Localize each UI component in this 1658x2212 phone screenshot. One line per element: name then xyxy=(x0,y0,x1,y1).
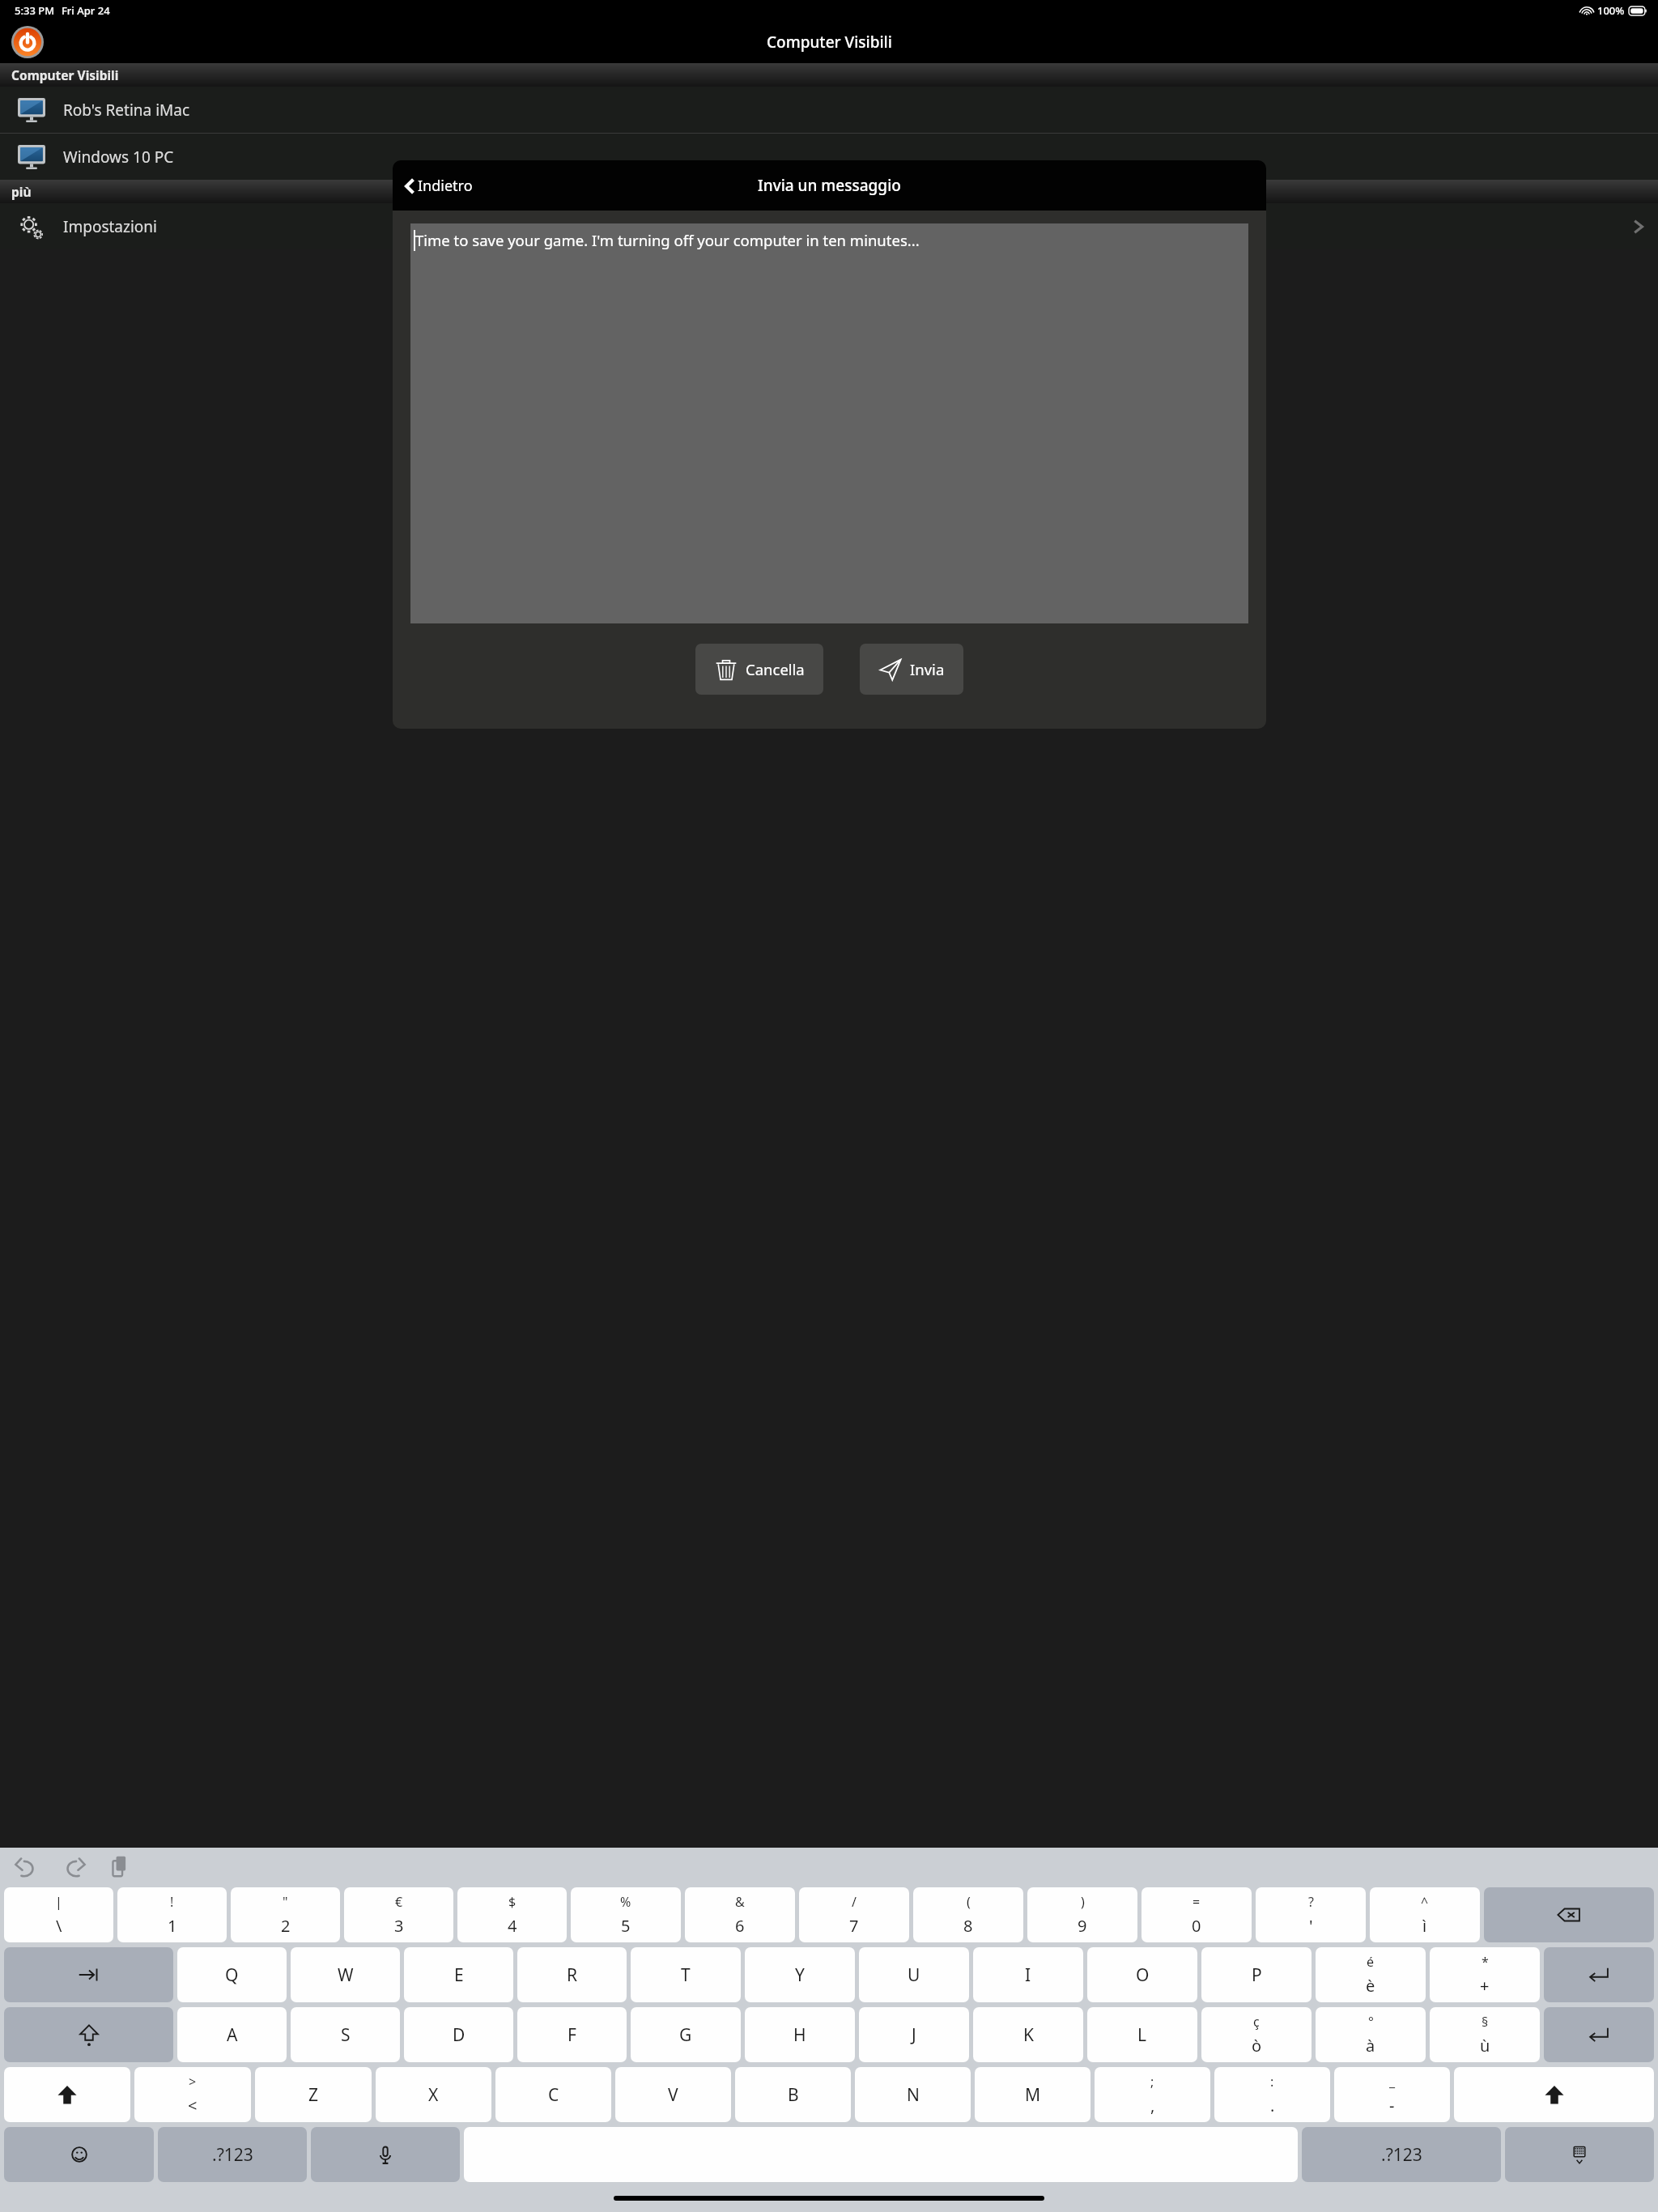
button[interactable]: é xyxy=(1316,1947,1426,2002)
button[interactable]: ( xyxy=(913,1887,1023,1942)
button[interactable]: € xyxy=(344,1887,453,1942)
button[interactable]: ret2 xyxy=(1544,2007,1654,2062)
button[interactable]: Redo xyxy=(60,1853,87,1880)
button[interactable]: Q xyxy=(177,1947,287,2002)
button[interactable]: A xyxy=(177,2007,287,2062)
button[interactable]: up xyxy=(4,2067,130,2122)
button[interactable]: up xyxy=(1454,2067,1654,2122)
button[interactable]: E xyxy=(404,1947,513,2002)
staticText: è xyxy=(1366,1975,1375,1997)
button[interactable]: .?123 xyxy=(1302,2127,1501,2182)
staticText: ç xyxy=(1253,2013,1260,2031)
staticText: O xyxy=(1136,1963,1150,1987)
staticText: > xyxy=(189,2073,197,2091)
button[interactable]: " xyxy=(231,1887,340,1942)
button[interactable]: Rob's Retina iMac xyxy=(0,87,1658,133)
button[interactable]: > xyxy=(134,2067,251,2122)
staticText: ^ xyxy=(1421,1893,1429,1911)
button[interactable]: ; xyxy=(1095,2067,1210,2122)
staticText: P xyxy=(1252,1963,1262,1987)
button[interactable]: Time to save your game. I'm turning off … xyxy=(410,223,1248,623)
button[interactable]: Indietro xyxy=(404,176,473,196)
button[interactable]: N xyxy=(855,2067,971,2122)
button[interactable]: V xyxy=(615,2067,731,2122)
button[interactable]: W xyxy=(291,1947,400,2002)
button[interactable]: mic xyxy=(311,2127,460,2182)
staticText: Impostazioni xyxy=(63,216,157,237)
staticText: Windows 10 PC xyxy=(63,147,174,168)
button[interactable]: _ xyxy=(1334,2067,1450,2122)
button[interactable]: % xyxy=(571,1887,681,1942)
button[interactable]: kbd xyxy=(1505,2127,1654,2182)
button[interactable]: K xyxy=(973,2007,1083,2062)
staticText: + xyxy=(1480,1975,1490,1997)
button[interactable]: Z xyxy=(255,2067,372,2122)
staticText: ( xyxy=(967,1893,971,1911)
button[interactable]: S xyxy=(291,2007,400,2062)
button[interactable]: .?123 xyxy=(158,2127,307,2182)
button[interactable]: Impostazioni xyxy=(0,203,1658,249)
button[interactable]: F xyxy=(517,2007,627,2062)
button[interactable]: Windows 10 PC xyxy=(0,134,1658,180)
button[interactable]: ç xyxy=(1201,2007,1312,2062)
staticText: 100% xyxy=(1597,3,1625,18)
button[interactable]: $ xyxy=(457,1887,567,1942)
button[interactable]: * xyxy=(1430,1947,1540,2002)
staticText: D xyxy=(453,2023,466,2047)
button[interactable]: shift xyxy=(4,2007,173,2062)
button[interactable]: D xyxy=(404,2007,513,2062)
button[interactable]: ) xyxy=(1027,1887,1137,1942)
staticText: - xyxy=(1389,2095,1395,2116)
staticText: V xyxy=(668,2083,678,2107)
button[interactable]: B xyxy=(735,2067,851,2122)
staticText: . xyxy=(1270,2095,1275,2116)
button[interactable]: P xyxy=(1201,1947,1312,2002)
button[interactable]: X xyxy=(376,2067,491,2122)
button[interactable]: emoji xyxy=(4,2127,154,2182)
button[interactable]: = xyxy=(1141,1887,1252,1942)
button[interactable]: ! xyxy=(117,1887,227,1942)
button[interactable]: L xyxy=(1087,2007,1197,2062)
button[interactable]: tab xyxy=(4,1947,173,2002)
button[interactable]: & xyxy=(685,1887,795,1942)
button[interactable]: ^ xyxy=(1370,1887,1480,1942)
staticText: 8 xyxy=(963,1915,973,1937)
button[interactable]: § xyxy=(1430,2007,1540,2062)
staticText: più xyxy=(11,183,32,200)
staticText: .?123 xyxy=(212,2143,253,2167)
button[interactable]: Y xyxy=(745,1947,855,2002)
button[interactable]: ? xyxy=(1256,1887,1366,1942)
button[interactable]: ret xyxy=(1544,1947,1654,2002)
staticText: M xyxy=(1025,2083,1041,2107)
button[interactable]: Undo xyxy=(13,1853,40,1880)
staticText: Computer Visibili xyxy=(11,66,119,83)
staticText: ì xyxy=(1422,1915,1427,1937)
staticText: .?123 xyxy=(1381,2143,1422,2167)
button[interactable]: Power xyxy=(11,26,44,58)
button[interactable]: U xyxy=(859,1947,969,2002)
staticText: Invia un messaggio xyxy=(758,175,901,196)
button[interactable]: Invia xyxy=(860,644,963,695)
button[interactable]: O xyxy=(1087,1947,1197,2002)
button[interactable]: C xyxy=(495,2067,611,2122)
staticText: Time to save your game. I'm turning off … xyxy=(415,230,920,250)
button[interactable]: bksp xyxy=(1484,1887,1654,1942)
staticText: Q xyxy=(225,1963,239,1987)
button[interactable]: I xyxy=(973,1947,1083,2002)
staticText: W xyxy=(338,1963,354,1987)
staticText: " xyxy=(283,1893,288,1911)
button[interactable]: Cancella xyxy=(695,644,823,695)
button[interactable]: Paste xyxy=(107,1853,134,1880)
button[interactable]: H xyxy=(745,2007,855,2062)
button[interactable]: J xyxy=(859,2007,969,2062)
button[interactable]: T xyxy=(631,1947,741,2002)
button[interactable]: ° xyxy=(1316,2007,1426,2062)
button[interactable]: G xyxy=(631,2007,741,2062)
staticText: G xyxy=(679,2023,692,2047)
button[interactable]: | xyxy=(4,1887,113,1942)
button[interactable]: : xyxy=(1214,2067,1330,2122)
button[interactable]: R xyxy=(517,1947,627,2002)
button[interactable]: / xyxy=(799,1887,909,1942)
button[interactable]: M xyxy=(975,2067,1090,2122)
